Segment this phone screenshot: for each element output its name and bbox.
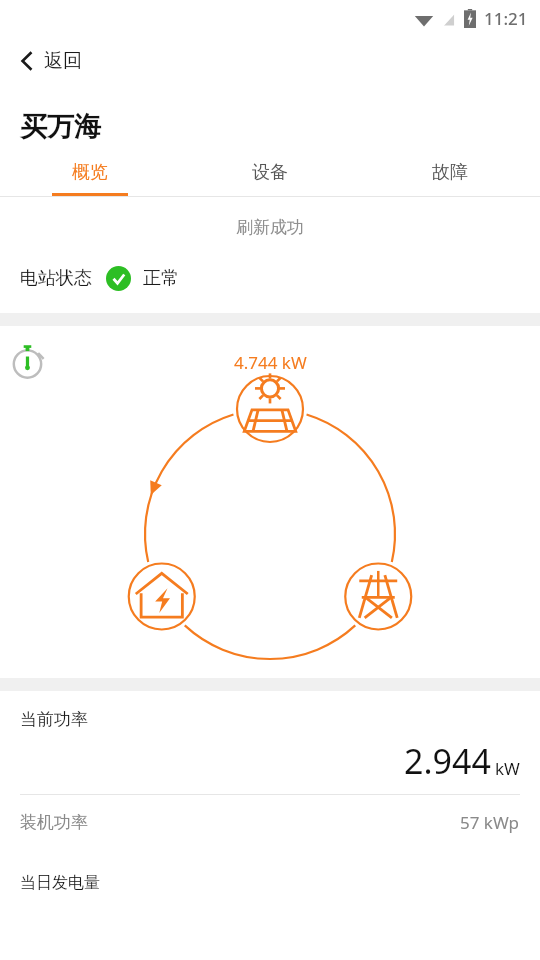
button[interactable]: 故障 (360, 148, 540, 196)
staticText: 刷新成功 (236, 217, 304, 238)
staticText: 设备 (252, 161, 288, 184)
button[interactable]: 返回 (0, 36, 540, 86)
staticText: 电站状态 (20, 267, 92, 290)
staticText: 返回 (44, 49, 82, 73)
button[interactable]: 设备 (180, 148, 360, 196)
staticText: 概览 (72, 161, 108, 184)
staticText: 装机功率 (20, 812, 88, 833)
staticText: 当日发电量 (20, 873, 100, 893)
staticText: 11:21 (484, 7, 528, 30)
staticText: 故障 (432, 161, 468, 184)
staticText: 57 kWp (460, 811, 520, 834)
staticText: 正常 (143, 267, 179, 290)
staticText: 当前功率 (20, 709, 88, 730)
staticText: 2.944 (404, 738, 491, 784)
button[interactable]: 概览 (0, 148, 180, 196)
staticText: 买万海 (20, 110, 101, 144)
staticText: 4.744 kW (234, 351, 307, 374)
staticText: kW (495, 757, 520, 780)
